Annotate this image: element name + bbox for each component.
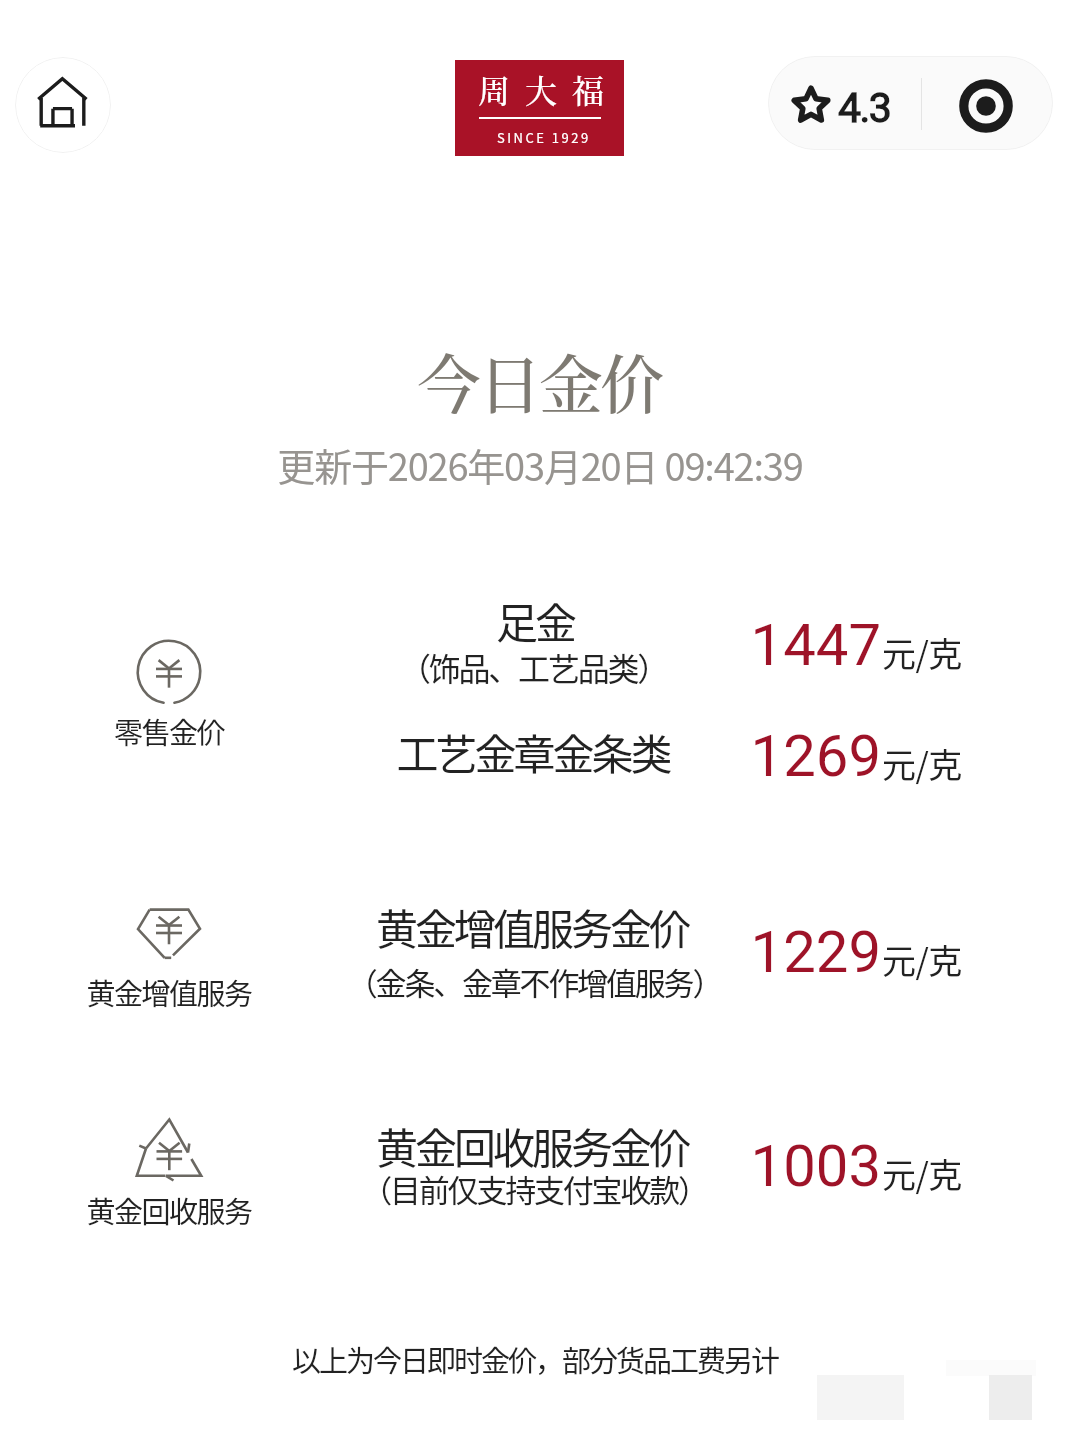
staticText: 1269 [581,722,881,790]
button[interactable]: Scan [930,56,1053,150]
staticText: 黄金增值服务 [0,971,689,1013]
staticText: 更新于2026年03月20日 09:42:39 [20,437,1060,492]
staticText: 4.3 [838,84,891,132]
button[interactable]: 黄金增值服务 [125,889,213,977]
button[interactable]: 工艺金章金条类 1269元/克 [40,708,1040,804]
staticText: 足金 [15,590,1055,651]
staticText: 周大福 [478,66,620,112]
button[interactable]: 4.3 [768,56,920,150]
staticText: SINCE 1929 [497,128,591,147]
button[interactable]: 周大福 [455,60,624,156]
staticText: 元/克 [882,1149,962,1198]
staticText: 零售金价 [0,710,689,752]
button[interactable]: 黄金回收服务金价 1003元/克 [40,1110,1040,1230]
staticText: （目前仅支持支付宝收款） [14,1166,1054,1211]
button[interactable]: 黄金增值服务金价 1229元/克 [40,892,1040,1012]
staticText: 黄金回收服务 [0,1189,689,1231]
staticText: （金条、金章不作增值服务） [14,959,1054,1004]
staticText: 黄金增值服务金价 [12,896,1052,957]
button[interactable]: 零售金价 [125,628,213,716]
staticText: 元/克 [882,739,962,788]
staticText: 元/克 [882,935,962,984]
button[interactable]: Home [15,57,111,153]
staticText: 1229 [581,918,881,986]
staticText: 今日金价 [19,334,1059,426]
staticText: （饰品、工艺品类） [13,644,1053,690]
staticText: 1003 [581,1132,881,1200]
staticText: 元/克 [882,628,962,677]
staticText: 以上为今日即时金价，部分货品工费另计 [15,1338,1055,1380]
staticText: 黄金回收服务金价 [12,1115,1052,1176]
button[interactable]: 黄金回收服务 [125,1104,213,1192]
button[interactable]: 足金 饰品、工艺品类 1447元/克 [40,586,1040,698]
staticText: 1447 [581,611,881,679]
staticText: 工艺金章金条类 [13,721,1053,782]
